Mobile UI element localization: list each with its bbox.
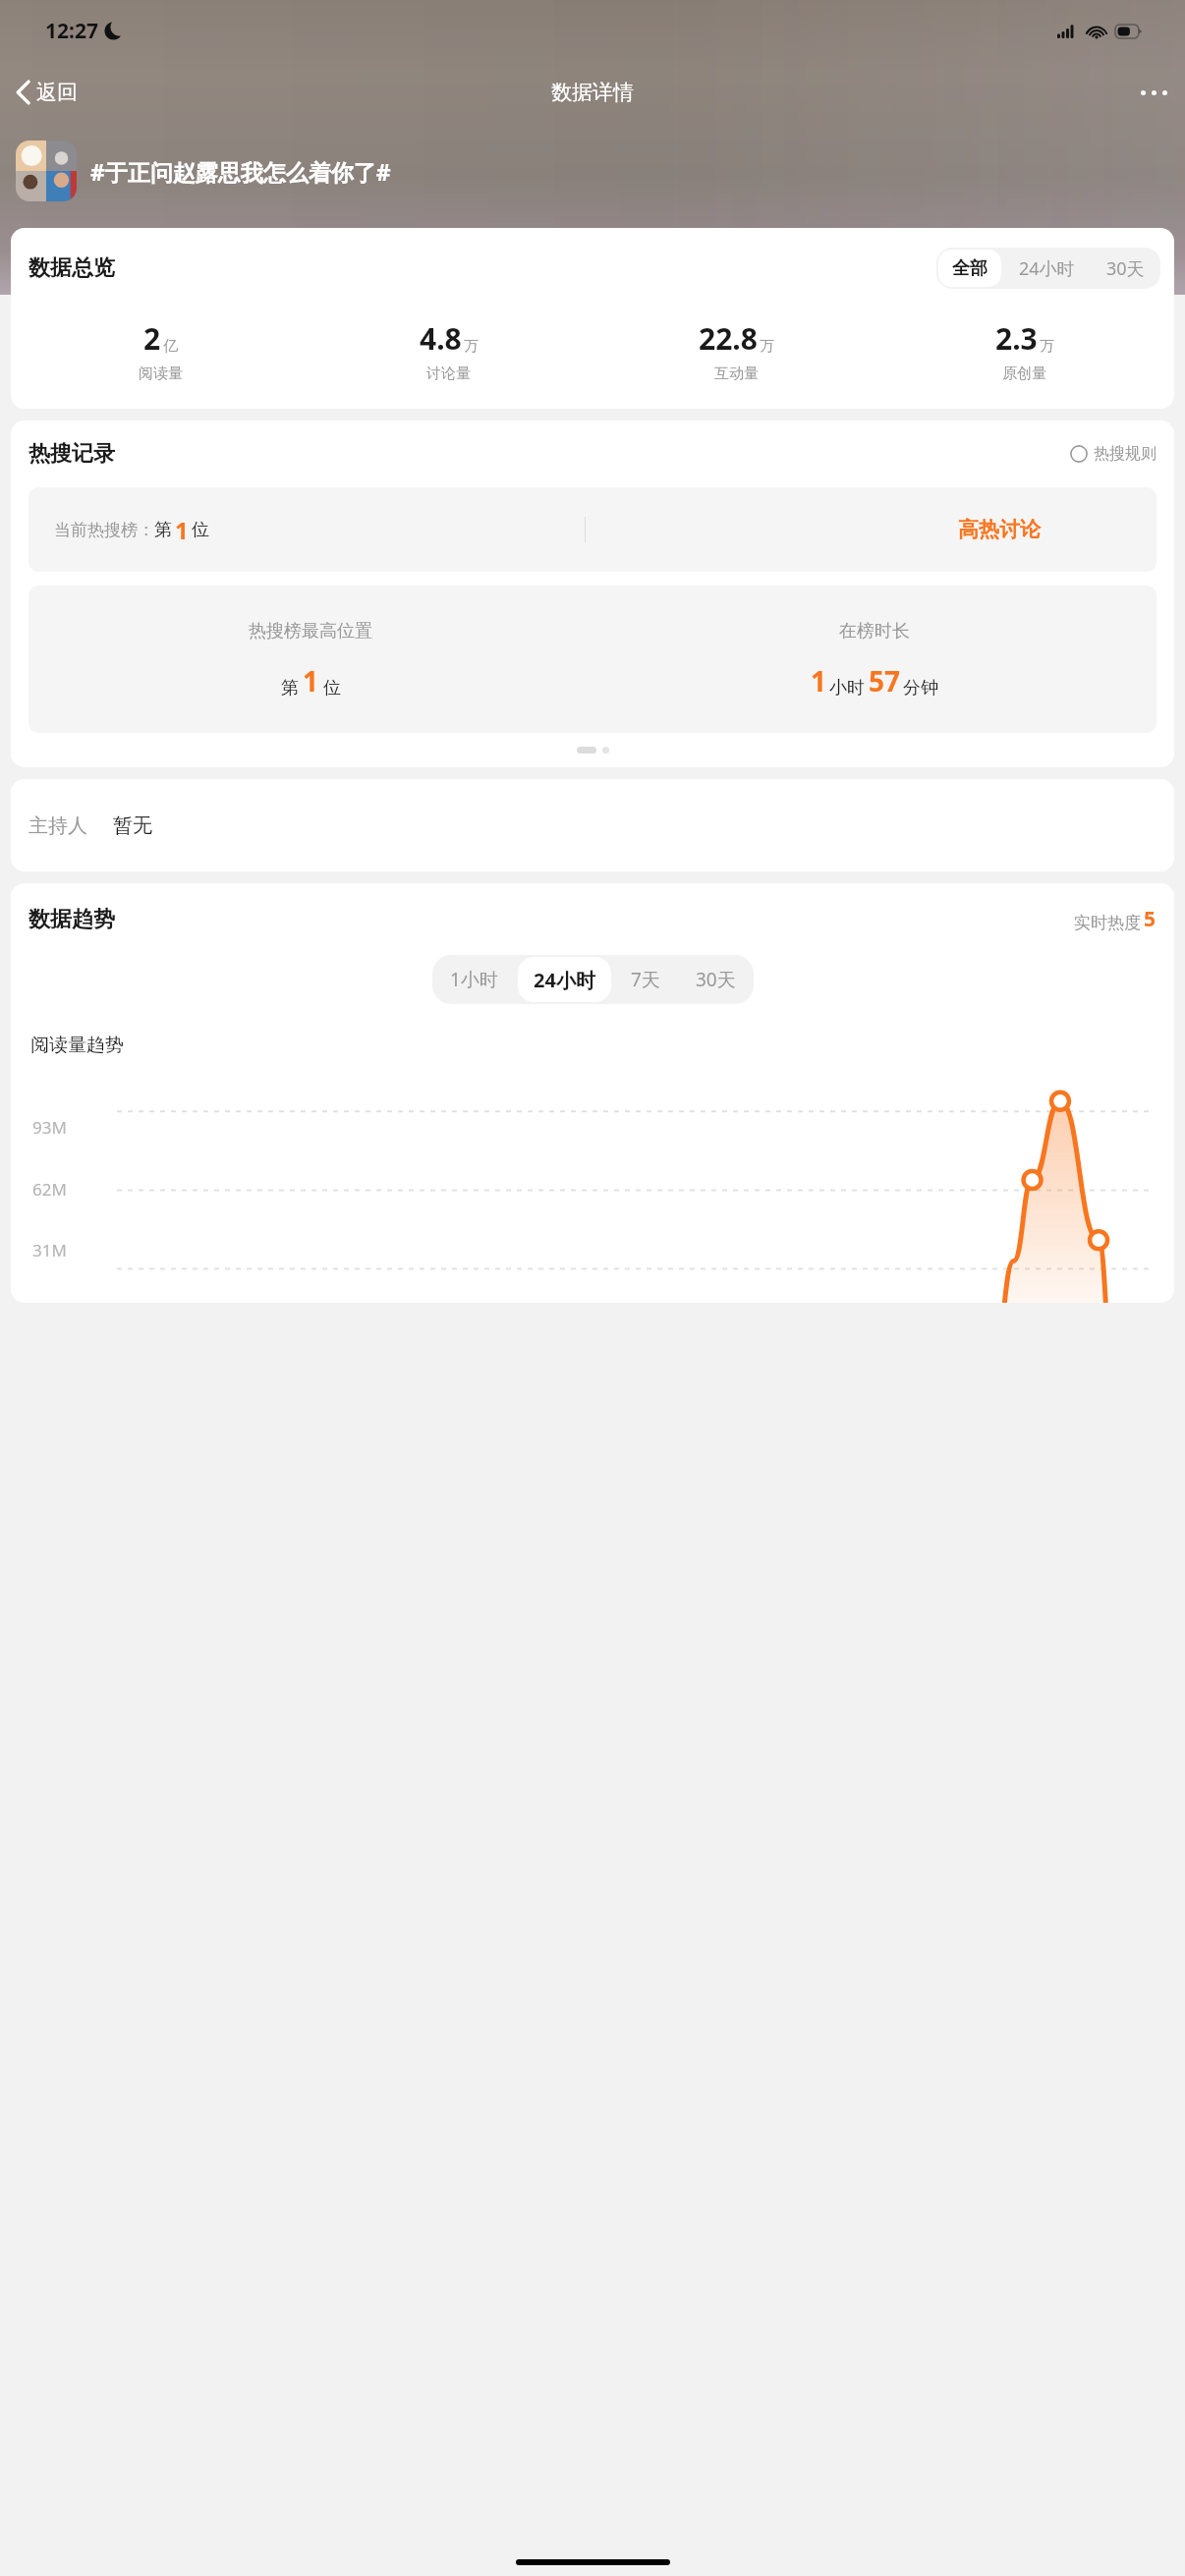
button[interactable]: 热搜规则 [1070, 444, 1157, 464]
staticText: 5 [1144, 905, 1157, 933]
staticText: 62M [32, 1178, 67, 1201]
button[interactable]: 热搜榜最高位置 [28, 586, 1157, 733]
staticText: 位 [323, 677, 341, 700]
staticText: 30天 [1106, 256, 1145, 281]
staticText: 讨论量 [426, 364, 471, 383]
staticText: 热搜榜最高位置 [249, 620, 372, 643]
button[interactable]: 2.3 [880, 318, 1168, 383]
staticText: 1 [303, 662, 319, 700]
staticText: 全部 [952, 257, 987, 280]
staticText: 24小时 [1019, 256, 1075, 281]
staticText: 万 [760, 337, 774, 356]
staticText: 实时热度 [1074, 913, 1141, 933]
staticText: 1小时 [450, 967, 498, 992]
staticText: 万 [464, 337, 479, 356]
button[interactable]: 24小时 [518, 957, 611, 1002]
staticText: 数据趋势 [28, 906, 115, 933]
staticText: 当前热搜榜： [54, 520, 154, 540]
button[interactable]: 返回 [0, 72, 89, 113]
button[interactable]: 7天 [615, 957, 676, 1002]
staticText: 阅读量 [139, 364, 183, 383]
button[interactable]: 主持人 [11, 779, 1174, 871]
staticText: 2.3 [995, 318, 1038, 359]
staticText: 57 [869, 662, 901, 700]
staticText: 热搜记录 [28, 440, 115, 468]
staticText: 数据总览 [28, 254, 115, 282]
staticText: 22.8 [699, 318, 758, 359]
button[interactable]: 22.8 [592, 318, 880, 383]
staticText: 万 [1040, 337, 1054, 356]
staticText: 暂无 [113, 813, 152, 838]
staticText: 位 [192, 519, 209, 541]
button[interactable]: 30天 [1093, 250, 1158, 287]
staticText: 24小时 [534, 967, 595, 993]
button[interactable]: More options [1123, 77, 1185, 109]
staticText: 12:27 [45, 17, 98, 45]
staticText: 1 [175, 514, 189, 546]
button[interactable]: 2 [17, 318, 305, 383]
button[interactable]: 30天 [680, 957, 752, 1002]
button[interactable]: 4.8 [305, 318, 592, 383]
staticText: 1 [811, 662, 827, 700]
staticText: 30天 [696, 967, 736, 992]
button[interactable]: 当前热搜榜： [28, 487, 1157, 572]
button[interactable]: 1小时 [434, 957, 514, 1002]
staticText: 分钟 [903, 677, 938, 700]
staticText: 高热讨论 [958, 517, 1041, 542]
staticText: 4.8 [420, 318, 462, 359]
staticText: 31M [32, 1239, 67, 1261]
staticText: 互动量 [714, 364, 759, 383]
button[interactable]: 全部 [938, 250, 1001, 287]
staticText: 在榜时长 [839, 620, 910, 643]
staticText: #于正问赵露思我怎么着你了# [90, 156, 391, 187]
staticText: 2 [143, 318, 161, 359]
button[interactable]: #于正问赵露思我怎么着你了# [0, 124, 1185, 218]
staticText: 数据详情 [551, 80, 634, 105]
staticText: 主持人 [28, 813, 87, 838]
staticText: 热搜规则 [1094, 444, 1157, 464]
staticText: 返回 [36, 80, 78, 105]
button[interactable]: 24小时 [1005, 250, 1089, 287]
staticText: 93M [32, 1116, 67, 1139]
staticText: 阅读量趋势 [30, 1034, 124, 1057]
staticText: 小时 [829, 677, 865, 700]
staticText: 第 [154, 519, 172, 541]
staticText: 7天 [631, 967, 660, 992]
staticText: 第 [281, 677, 299, 700]
staticText: 亿 [163, 337, 178, 356]
staticText: 原创量 [1002, 364, 1046, 383]
